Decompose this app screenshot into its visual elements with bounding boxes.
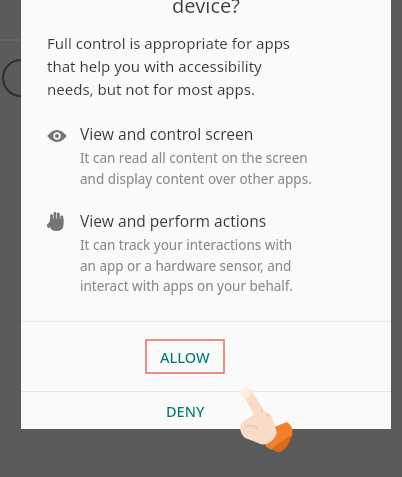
staticText: View and control screen <box>80 123 254 144</box>
button[interactable]: DENY <box>21 392 391 429</box>
staticText: DENY <box>166 401 205 421</box>
staticText: Full control is appropriate for apps tha… <box>47 33 291 99</box>
staticText: It can track your interactions with an a… <box>80 236 293 295</box>
button[interactable]: ALLOW <box>21 322 391 391</box>
staticText: …control your device? <box>47 0 365 19</box>
staticText: View and perform actions <box>80 210 267 231</box>
staticText: ALLOW <box>160 347 210 367</box>
other: Tap pointer <box>231 389 293 455</box>
staticText: It can read all content on the screen an… <box>80 149 312 188</box>
